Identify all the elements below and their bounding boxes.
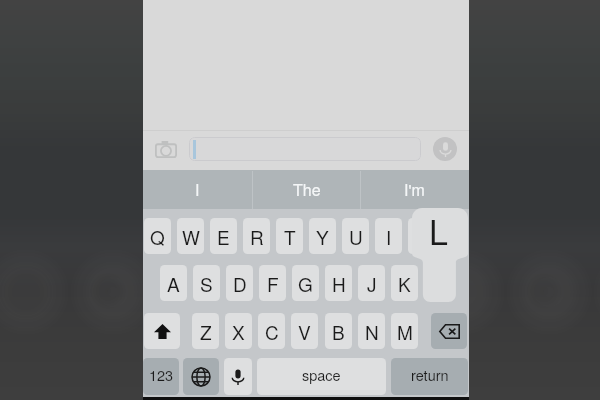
staticText: M	[397, 318, 413, 345]
staticText: W	[182, 223, 200, 250]
staticText: N	[365, 318, 379, 345]
staticText: Q	[150, 223, 165, 250]
staticText: G	[298, 270, 313, 297]
button[interactable]: D	[226, 265, 253, 301]
staticText: I	[195, 178, 200, 201]
staticText: I'm	[404, 178, 425, 201]
button[interactable]: Q	[144, 218, 171, 254]
staticText: K	[398, 270, 411, 297]
staticText: U	[349, 223, 363, 250]
button[interactable]: The	[252, 170, 361, 209]
button[interactable]: N	[358, 313, 385, 349]
staticText: 123	[149, 364, 174, 385]
button[interactable]: space	[257, 358, 386, 395]
button[interactable]: 123	[143, 358, 179, 395]
button[interactable]: M	[391, 313, 418, 349]
staticText: space	[302, 364, 341, 385]
staticText: J	[367, 270, 377, 297]
button[interactable]: Shift	[144, 313, 180, 349]
staticText: return	[411, 364, 449, 385]
button[interactable]: Dictation	[224, 358, 252, 395]
button[interactable]	[189, 137, 421, 161]
button[interactable]: I	[375, 218, 402, 254]
button[interactable]: J	[358, 265, 385, 301]
button[interactable]: Change keyboard	[183, 358, 219, 395]
button[interactable]: F	[259, 265, 286, 301]
button[interactable]: Camera	[151, 136, 181, 162]
button[interactable]: I'm	[360, 170, 469, 209]
staticText: A	[167, 270, 180, 297]
button[interactable]: Y	[309, 218, 336, 254]
staticText: H	[332, 270, 346, 297]
staticText: L	[429, 206, 448, 248]
button[interactable]: E	[210, 218, 237, 254]
button[interactable]: return	[391, 358, 468, 395]
staticText: B	[332, 318, 345, 345]
button[interactable]: T	[276, 218, 303, 254]
staticText: E	[217, 223, 230, 250]
staticText: X	[232, 318, 245, 345]
button[interactable]: C	[258, 313, 285, 349]
staticText: I	[386, 223, 392, 250]
button[interactable]: B	[325, 313, 352, 349]
button[interactable]: S	[193, 265, 220, 301]
button[interactable]: H	[325, 265, 352, 301]
button[interactable]: Voice input	[433, 137, 457, 161]
button[interactable]: A	[160, 265, 187, 301]
button[interactable]: O	[408, 218, 435, 254]
button[interactable]: Backspace	[431, 313, 467, 349]
button[interactable]: R	[243, 218, 270, 254]
staticText: Z	[200, 318, 212, 345]
button[interactable]: P	[441, 218, 468, 254]
staticText: S	[200, 270, 213, 297]
staticText: V	[298, 318, 311, 345]
staticText: D	[233, 270, 247, 297]
button[interactable]: U	[342, 218, 369, 254]
button[interactable]: W	[177, 218, 204, 254]
staticText: R	[250, 223, 264, 250]
staticText: C	[265, 318, 279, 345]
button[interactable]: G	[292, 265, 319, 301]
button[interactable]: X	[225, 313, 252, 349]
button[interactable]: K	[391, 265, 418, 301]
staticText: T	[284, 223, 296, 250]
button[interactable]: V	[291, 313, 318, 349]
staticText: Y	[316, 223, 329, 250]
staticText: F	[267, 270, 279, 297]
button[interactable]: I	[143, 170, 252, 209]
button[interactable]: Z	[192, 313, 219, 349]
staticText: The	[293, 178, 321, 201]
